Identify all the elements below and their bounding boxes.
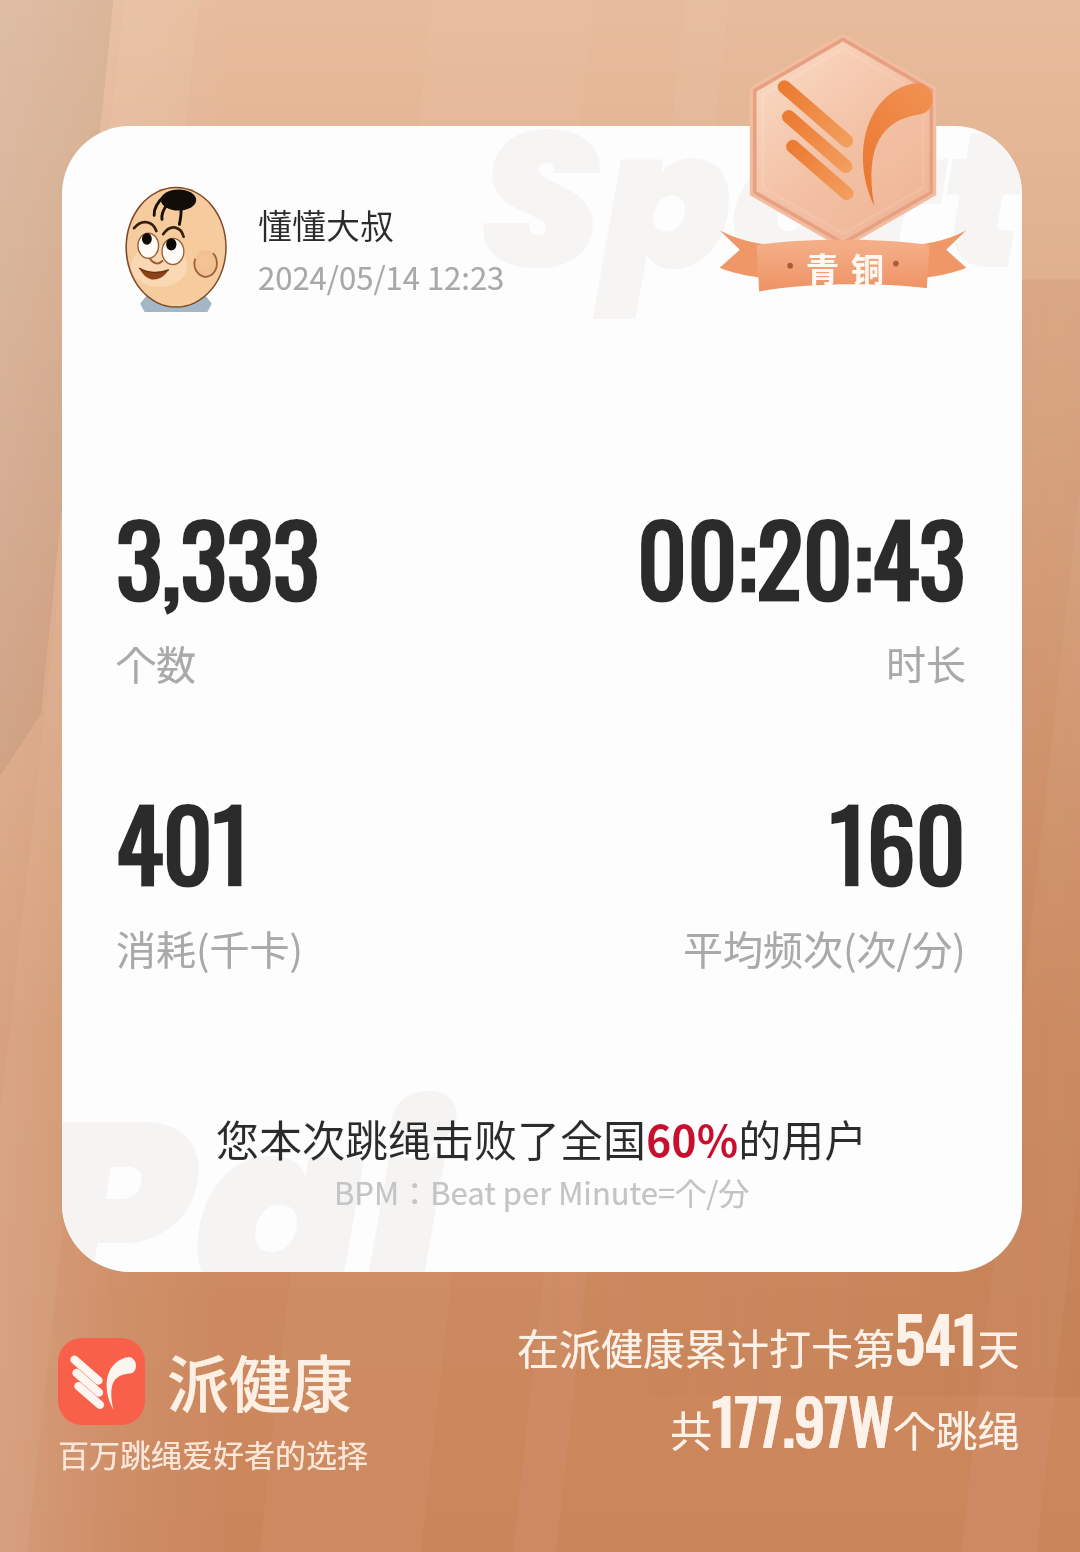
staticText: 个数 (116, 634, 196, 692)
staticText: 160 (830, 769, 966, 913)
staticText: 00:20:43 (637, 484, 966, 628)
staticText: Sport (480, 126, 1022, 334)
staticText: 3,333 (116, 484, 320, 628)
staticText: 百万跳绳爱好者的选择 (58, 1431, 368, 1476)
button[interactable]: 用户头像 Avatar (120, 184, 232, 312)
staticText: 派健康 (167, 1336, 354, 1426)
staticText: 401 (116, 769, 250, 913)
staticText: 您本次跳绳击败了全国60%的用户 (216, 1107, 868, 1169)
staticText: 在派健康累计打卡第541天 (517, 1291, 1020, 1383)
staticText: 青铜 (800, 244, 890, 292)
staticText: Pai (62, 1036, 445, 1272)
button[interactable]: 青铜勋章 Bronze badge (714, 42, 972, 300)
staticText: 平均频次(次/分) (683, 919, 966, 977)
staticText: 时长 (886, 634, 966, 692)
staticText: 消耗(千卡) (116, 919, 304, 977)
button[interactable]: 派健康 (58, 1336, 354, 1426)
staticText: 共177.97W个跳绳 (670, 1373, 1020, 1465)
staticText: BPM：Beat per Minute=个/分 (334, 1169, 750, 1214)
staticText: 2024/05/14 12:23 (258, 254, 505, 299)
staticText: 懂懂大叔 (258, 200, 394, 249)
button[interactable]: 懂懂大叔 (258, 200, 505, 299)
